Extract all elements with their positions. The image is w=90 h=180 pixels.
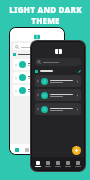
button[interactable] xyxy=(13,43,61,50)
button[interactable]: Tab 1 xyxy=(13,146,20,153)
button[interactable]: Tab 2 xyxy=(23,146,30,153)
staticText: THEME xyxy=(31,15,60,26)
button[interactable] xyxy=(35,89,81,101)
button[interactable]: Tab 3 xyxy=(53,157,63,170)
staticText: LIGHT AND DARK xyxy=(9,4,82,15)
button[interactable]: Add xyxy=(72,146,81,155)
button[interactable]: Tab 2 xyxy=(43,157,53,170)
button[interactable]: Edit xyxy=(77,69,81,73)
button[interactable] xyxy=(35,58,81,66)
button[interactable]: Tab 5 xyxy=(73,157,83,170)
button[interactable]: Tab 4 xyxy=(63,157,73,170)
button[interactable] xyxy=(13,72,61,83)
button[interactable] xyxy=(13,85,61,96)
button[interactable] xyxy=(13,59,61,70)
button[interactable] xyxy=(35,103,81,115)
button[interactable] xyxy=(35,75,81,87)
button[interactable]: Tab 1 xyxy=(33,157,43,170)
